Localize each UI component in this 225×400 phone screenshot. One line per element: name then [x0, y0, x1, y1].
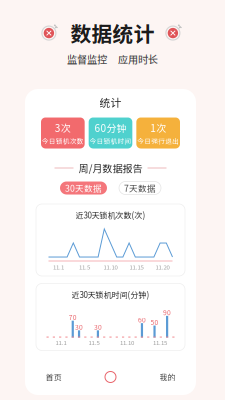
staticText: 周/月数据报告 [78, 161, 142, 175]
staticText: 50 [150, 317, 158, 327]
staticText: 今日锁机次数 [42, 136, 84, 146]
staticText: 11.1 [53, 263, 64, 271]
staticText: 统计 [99, 94, 121, 110]
staticText: 11.15 [153, 338, 167, 347]
staticText: 近30天锁机次数(次) [75, 209, 145, 221]
staticText: 30 [75, 322, 83, 332]
staticText: 60 [138, 315, 146, 324]
staticText: 1次 [150, 120, 166, 135]
staticText: 首页 [45, 371, 61, 383]
staticText: 11.15 [129, 263, 143, 271]
staticText: 11.10 [103, 263, 117, 271]
staticText: 30 [94, 322, 102, 332]
staticText: 监督监控 [67, 52, 107, 66]
staticText: 我的 [159, 371, 175, 383]
staticText: 数据统计 [70, 18, 154, 48]
staticText: 60分钟 [94, 120, 126, 135]
staticText: 7天数据 [124, 182, 156, 194]
staticText: 11.1 [55, 338, 66, 347]
staticText: 11.20 [155, 263, 169, 271]
staticText: 11.5 [88, 338, 99, 347]
button[interactable]: 30天数据 [60, 181, 107, 194]
staticText: 90 [163, 308, 171, 317]
button[interactable]: 7天数据 [119, 181, 161, 194]
staticText: 近30天锁机时间(分钟) [71, 289, 149, 300]
staticText: 今日强行退出 [137, 136, 179, 146]
button[interactable]: 我的 [139, 363, 196, 391]
staticText: 应用时长 [118, 52, 158, 66]
staticText: 3次 [55, 120, 71, 135]
staticText: 70 [69, 312, 77, 322]
staticText: 今日锁机时间 [89, 136, 131, 146]
staticText: 30天数据 [65, 182, 102, 194]
staticText: 11.10 [120, 338, 134, 347]
button[interactable]: 首页 [25, 363, 82, 391]
button[interactable]: 统计 [82, 363, 139, 391]
staticText: 11.5 [79, 263, 90, 271]
